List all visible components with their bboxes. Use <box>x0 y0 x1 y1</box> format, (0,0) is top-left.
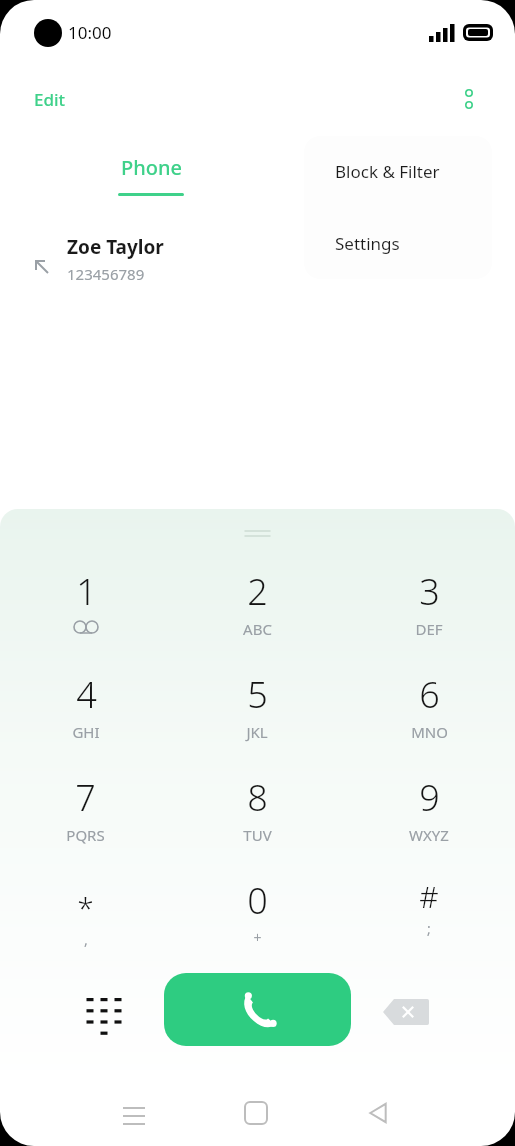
staticText: 8 <box>247 773 268 822</box>
staticText: 5 <box>247 670 268 719</box>
button[interactable]: More options <box>446 76 492 122</box>
staticText: 0 <box>247 876 268 925</box>
staticText: Block & Filter <box>335 160 440 183</box>
button[interactable]: 3 <box>343 556 515 659</box>
staticText: 2 <box>247 567 268 616</box>
staticText: Phone <box>121 154 182 181</box>
staticText: MNO <box>411 722 448 742</box>
button[interactable]: 2 <box>171 556 343 659</box>
button[interactable]: * <box>0 865 171 968</box>
staticText: TUV <box>243 825 272 845</box>
staticText: 9 <box>419 773 440 822</box>
staticText: , <box>84 930 88 949</box>
button[interactable]: Block & Filter <box>304 136 492 207</box>
button[interactable]: Home <box>222 1088 290 1138</box>
button[interactable]: Backspace <box>382 988 430 1036</box>
staticText: ABC <box>243 619 272 639</box>
button[interactable]: Settings <box>304 207 492 279</box>
button[interactable]: 0 <box>171 865 343 968</box>
staticText: Zoe Taylor <box>67 234 164 260</box>
staticText: 7 <box>75 773 96 822</box>
staticText: 3 <box>419 567 440 616</box>
button[interactable]: Recents <box>100 1088 168 1138</box>
button[interactable]: 5 <box>171 659 343 762</box>
button[interactable]: 9 <box>343 762 515 865</box>
staticText: PQRS <box>66 825 105 845</box>
staticText: 4 <box>76 670 97 719</box>
button[interactable]: Hide keypad <box>84 988 132 1036</box>
button[interactable]: Back <box>344 1088 412 1138</box>
button[interactable]: 7 <box>0 762 171 865</box>
staticText: # <box>419 876 439 917</box>
staticText: Edit <box>34 88 66 111</box>
staticText: 123456789 <box>67 264 145 284</box>
button[interactable]: Edit <box>22 82 78 117</box>
staticText: DEF <box>415 619 443 639</box>
staticText: Settings <box>335 232 400 255</box>
staticText: 1 <box>76 567 97 616</box>
button[interactable]: Zoe Taylor <box>0 222 515 296</box>
staticText: 10:00 <box>68 21 112 44</box>
button[interactable]: # <box>343 865 515 968</box>
staticText: + <box>253 928 262 947</box>
button[interactable]: 6 <box>343 659 515 762</box>
staticText: * <box>77 887 94 928</box>
button[interactable]: 1 <box>0 556 171 659</box>
staticText: ; <box>427 919 431 938</box>
button[interactable]: Phone <box>104 148 198 202</box>
staticText: WXYZ <box>409 825 449 845</box>
staticText: JKL <box>246 722 268 742</box>
button[interactable]: 4 <box>0 659 171 762</box>
staticText: 6 <box>419 670 440 719</box>
button[interactable]: 8 <box>171 762 343 865</box>
button[interactable]: Call <box>164 973 351 1046</box>
staticText: GHI <box>72 722 100 742</box>
